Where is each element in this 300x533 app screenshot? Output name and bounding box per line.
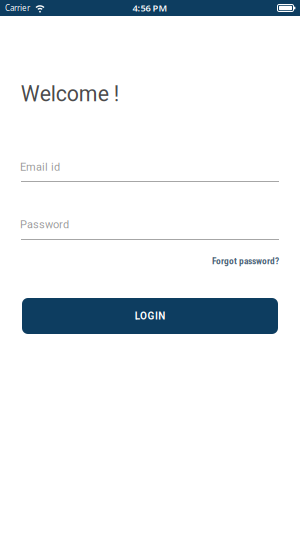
staticText: 4:56 PM [132,2,167,14]
staticText: LOGIN [135,310,165,322]
staticText: Forgot password? [212,255,279,267]
button[interactable]: LOGIN [22,298,278,334]
button[interactable]: Forgot password? [212,255,279,267]
staticText: Welcome ! [21,81,120,106]
staticText: Email id [20,161,60,173]
staticText: Password [20,218,69,231]
staticText: Carrier [5,3,30,13]
